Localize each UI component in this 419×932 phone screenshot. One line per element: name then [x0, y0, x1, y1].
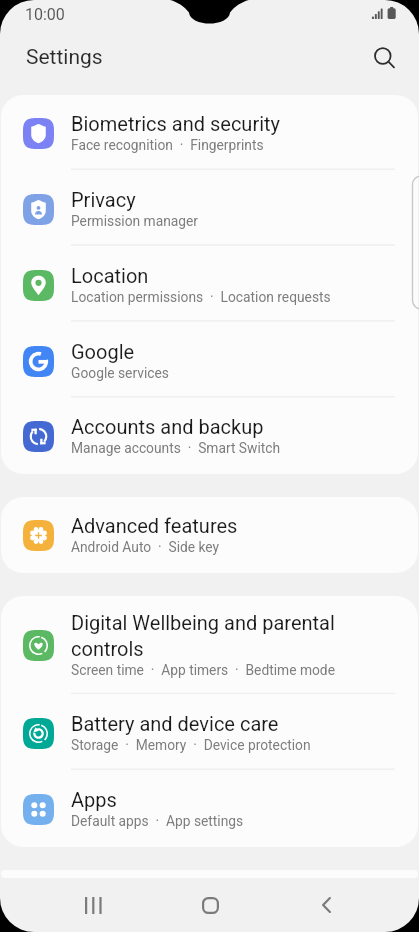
staticText: Permission manager: [71, 213, 199, 229]
staticText: Default apps · App settings: [71, 813, 244, 829]
staticText: Advanced features: [71, 514, 238, 537]
staticText: Digital Wellbeing and parental controls: [71, 611, 335, 660]
staticText: Biometrics and security: [71, 112, 281, 135]
staticText: Android Auto · Side key: [71, 539, 220, 555]
staticText: Google: [71, 340, 135, 363]
staticText: 10:00: [25, 5, 65, 24]
button[interactable]: Battery and device care: [1, 695, 418, 771]
staticText: Settings: [26, 45, 103, 70]
staticText: Google services: [71, 365, 169, 381]
staticText: Face recognition · Fingerprints: [71, 137, 264, 153]
button[interactable]: Back: [296, 881, 356, 929]
button[interactable]: Advanced features: [1, 497, 418, 573]
button[interactable]: Apps: [1, 771, 418, 847]
button[interactable]: Biometrics and security: [1, 95, 418, 171]
staticText: Screen time · App timers · Bedtime mode: [71, 662, 335, 678]
button[interactable]: Google: [1, 323, 418, 399]
staticText: Manage accounts · Smart Switch: [71, 440, 281, 456]
staticText: Location permissions · Location requests: [71, 289, 331, 305]
button[interactable]: Location: [1, 247, 418, 323]
button[interactable]: Recents: [63, 881, 123, 929]
button[interactable]: Digital Wellbeing and parental controls: [1, 596, 418, 695]
button[interactable]: Accounts and backup: [1, 399, 418, 474]
button[interactable]: Search: [363, 37, 407, 81]
staticText: Accounts and backup: [71, 415, 264, 438]
staticText: Battery and device care: [71, 712, 279, 735]
staticText: Privacy: [71, 188, 136, 211]
button[interactable]: Home: [180, 881, 240, 929]
staticText: Apps: [71, 788, 117, 811]
staticText: Storage · Memory · Device protection: [71, 737, 311, 753]
button[interactable]: Privacy: [1, 171, 418, 247]
staticText: Location: [71, 264, 149, 287]
